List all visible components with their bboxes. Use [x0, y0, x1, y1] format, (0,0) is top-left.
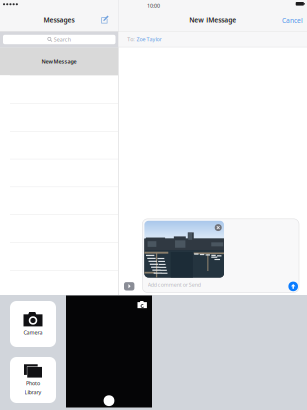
button[interactable]: Photo [10, 357, 56, 403]
staticText: Cancel [282, 16, 303, 25]
staticText: 10:00 [147, 2, 160, 9]
staticText: New Message [41, 58, 76, 65]
staticText: New iMessage [189, 15, 236, 24]
button[interactable]: Cancel [279, 14, 306, 27]
button[interactable]: App drawer [123, 281, 135, 291]
button[interactable]: New Message [97, 11, 113, 27]
staticText: Search [54, 36, 71, 43]
button[interactable]: Remove attachment [214, 223, 223, 232]
button[interactable]: New Message [0, 48, 118, 75]
staticText: Add comment or Send [148, 281, 201, 288]
staticText: To: [127, 36, 134, 43]
staticText: Library [24, 389, 41, 396]
staticText: Camera [23, 329, 42, 336]
button[interactable]: Switch camera [137, 301, 148, 309]
staticText: Zoe Taylor [136, 36, 161, 43]
staticText: Photo [26, 380, 40, 387]
staticText: Messages [43, 15, 74, 24]
button[interactable]: Search [3, 35, 115, 44]
button[interactable]: Camera [10, 301, 56, 347]
button[interactable]: Send [287, 281, 299, 292]
button[interactable]: Zoe Taylor [136, 36, 161, 43]
